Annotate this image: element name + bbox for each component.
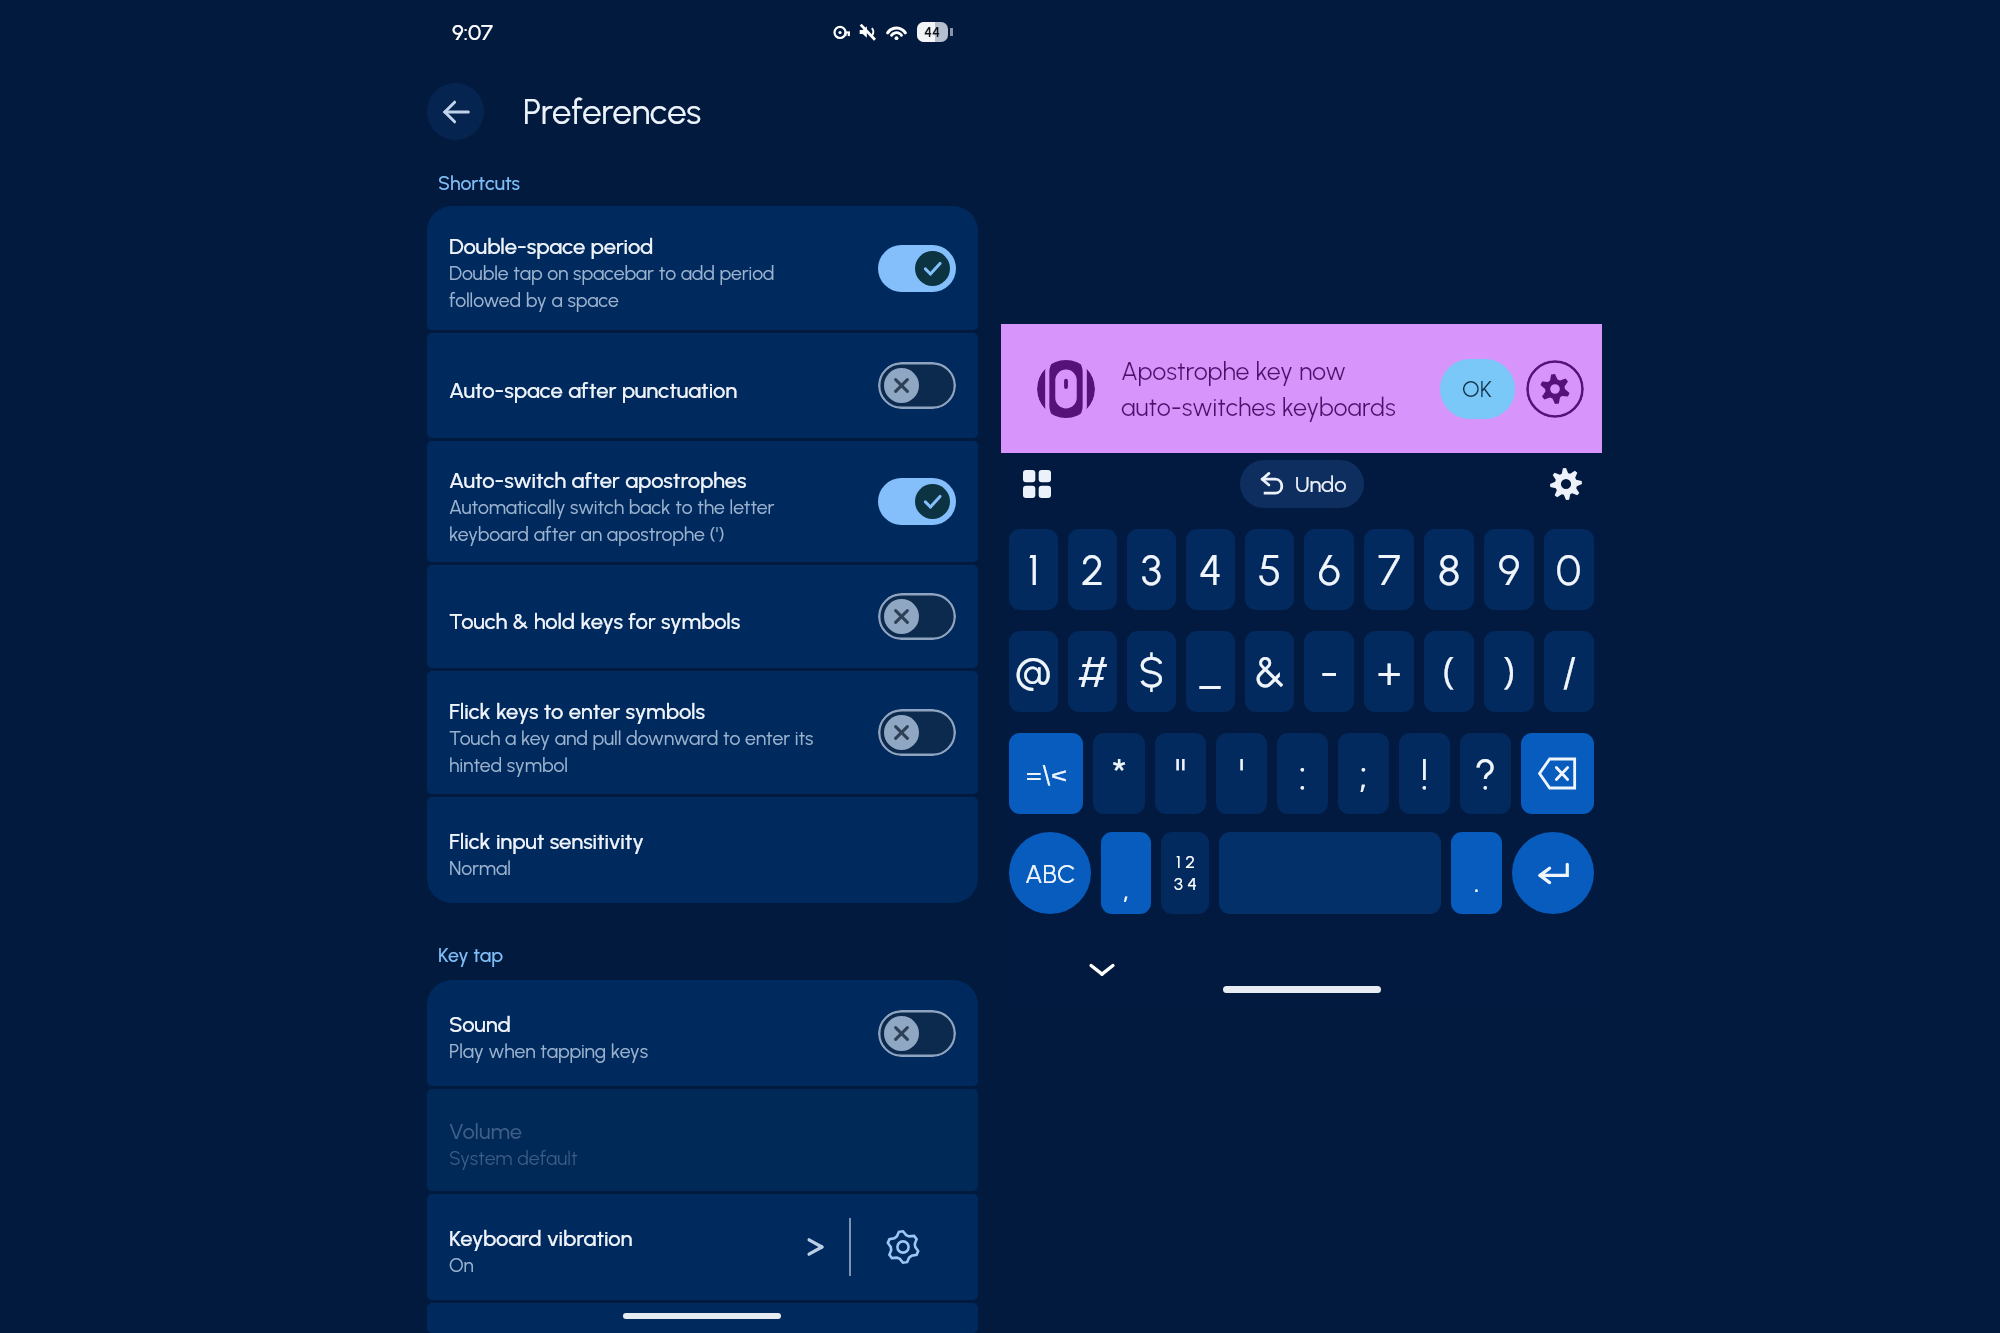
button[interactable]: Back xyxy=(427,83,484,140)
staticText: Automatically switch back to the letter … xyxy=(449,496,775,545)
staticText: Keyboard vibration xyxy=(449,1225,633,1251)
button[interactable] xyxy=(427,1303,978,1333)
button[interactable]: * xyxy=(1093,733,1145,814)
staticText: , xyxy=(1123,871,1130,907)
button[interactable]: ' xyxy=(1216,733,1267,814)
button[interactable]: On xyxy=(878,245,956,292)
button[interactable]: Auto-switch after apostrophes xyxy=(427,441,978,562)
staticText: ? xyxy=(1475,749,1497,799)
button[interactable]: - xyxy=(1304,631,1354,712)
button[interactable]: =\< xyxy=(1009,733,1083,814)
staticText: ! xyxy=(1421,749,1429,799)
button[interactable]: ) xyxy=(1484,631,1534,712)
button[interactable]: ? xyxy=(1460,733,1511,814)
staticText: Flick input sensitivity xyxy=(449,828,644,854)
button[interactable]: Flick keys to enter symbols xyxy=(427,671,978,794)
button[interactable]: Touch & hold keys for symbols xyxy=(427,565,978,668)
button[interactable]: Backspace xyxy=(1521,733,1594,814)
button[interactable]: Keyboard settings xyxy=(1544,462,1588,506)
staticText: Double-space period xyxy=(449,233,654,259)
staticText: Key tap xyxy=(438,943,503,966)
button[interactable]: _ xyxy=(1186,631,1235,712)
button[interactable]: Off xyxy=(878,709,956,756)
staticText: Normal xyxy=(449,857,511,880)
staticText: @ xyxy=(1015,647,1052,697)
staticText: 8 xyxy=(1438,545,1461,595)
staticText: ABC xyxy=(1025,858,1076,889)
staticText: # xyxy=(1077,647,1109,697)
staticText: / xyxy=(1562,647,1577,697)
staticText: Flick keys to enter symbols xyxy=(449,698,705,724)
staticText: Shortcuts xyxy=(438,171,520,194)
staticText: 1 2 3 4 xyxy=(1174,851,1197,895)
staticText: ; xyxy=(1359,749,1368,799)
button[interactable]: 7 xyxy=(1364,529,1414,610)
button[interactable]: 6 xyxy=(1304,529,1354,610)
button[interactable]: $ xyxy=(1127,631,1176,712)
button[interactable]: Sound xyxy=(427,980,978,1086)
button[interactable]: Enter xyxy=(1512,832,1594,914)
staticText: Auto-space after punctuation xyxy=(449,377,738,403)
staticText: Apostrophe key now auto-switches keyboar… xyxy=(1121,356,1440,422)
staticText: 9 xyxy=(1498,545,1521,595)
staticText: " xyxy=(1175,749,1186,799)
staticText: 7 xyxy=(1378,545,1401,595)
button[interactable]: Keyboard vibration xyxy=(427,1194,978,1300)
button[interactable]: 4 xyxy=(1186,529,1235,610)
staticText: 2 xyxy=(1081,545,1104,595)
button[interactable]: Double-space period xyxy=(427,206,978,330)
button[interactable]: Off xyxy=(878,593,956,640)
button[interactable]: Vibration settings xyxy=(885,1229,921,1265)
button[interactable]: 3 xyxy=(1127,529,1176,610)
button[interactable]: + xyxy=(1364,631,1414,712)
button[interactable]: & xyxy=(1245,631,1294,712)
staticText: 6 xyxy=(1318,545,1341,595)
button[interactable]: OK xyxy=(1440,359,1515,419)
button[interactable]: Off xyxy=(878,362,956,409)
staticText: On xyxy=(449,1254,474,1277)
button[interactable]: / xyxy=(1544,631,1594,712)
button[interactable]: Undo xyxy=(1240,460,1364,508)
button[interactable]: ABC xyxy=(1009,832,1091,914)
button[interactable]: # xyxy=(1068,631,1117,712)
button[interactable]: , xyxy=(1101,832,1151,914)
button[interactable]: 1 2 3 4 xyxy=(1161,832,1209,914)
staticText: 44 xyxy=(924,24,941,41)
button[interactable]: Volume xyxy=(427,1089,978,1191)
button[interactable]: 8 xyxy=(1424,529,1474,610)
button[interactable]: 0 xyxy=(1544,529,1594,610)
staticText: 1 xyxy=(1028,545,1040,595)
button[interactable]: Settings xyxy=(1526,360,1584,418)
button[interactable]: 1 xyxy=(1009,529,1058,610)
staticText: + xyxy=(1377,647,1402,697)
staticText: Touch a key and pull downward to enter i… xyxy=(449,727,814,776)
button[interactable]: : xyxy=(1277,733,1328,814)
button[interactable]: Toolbox xyxy=(1015,462,1059,506)
button[interactable]: Flick input sensitivity xyxy=(427,797,978,903)
button[interactable]: 2 xyxy=(1068,529,1117,610)
button[interactable]: Auto-space after punctuation xyxy=(427,333,978,438)
staticText: ' xyxy=(1239,749,1245,799)
staticText: OK xyxy=(1462,375,1493,403)
staticText: 5 xyxy=(1258,545,1282,595)
staticText: Play when tapping keys xyxy=(449,1040,648,1063)
button[interactable]: ; xyxy=(1338,733,1389,814)
staticText: Sound xyxy=(449,1011,511,1037)
button[interactable]: Space xyxy=(1219,832,1441,914)
staticText: $ xyxy=(1139,647,1164,697)
button[interactable]: " xyxy=(1155,733,1206,814)
button[interactable]: On xyxy=(878,478,956,525)
staticText: ) xyxy=(1502,647,1516,697)
button[interactable]: Hide keyboard xyxy=(1089,962,1115,978)
button[interactable]: ! xyxy=(1399,733,1450,814)
staticText: 3 xyxy=(1141,545,1162,595)
button[interactable]: ( xyxy=(1424,631,1474,712)
staticText: _ xyxy=(1197,647,1224,697)
staticText: ( xyxy=(1442,647,1456,697)
button[interactable]: @ xyxy=(1009,631,1058,712)
button[interactable]: 9 xyxy=(1484,529,1534,610)
button[interactable]: Off xyxy=(878,1010,956,1057)
button[interactable]: 5 xyxy=(1245,529,1294,610)
button[interactable]: . xyxy=(1451,832,1502,914)
staticText: 9:07 xyxy=(452,19,493,45)
